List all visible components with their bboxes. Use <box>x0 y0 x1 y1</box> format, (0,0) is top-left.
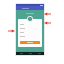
button[interactable]: Profile photo <box>28 17 32 21</box>
button[interactable]: Navigation item <box>35 52 44 55</box>
button[interactable]: Annotation marker <box>8 29 15 33</box>
button[interactable]: Annotation marker <box>44 21 51 25</box>
button[interactable]: Menu <box>16 6 44 10</box>
button[interactable] <box>20 41 40 44</box>
button[interactable]: Navigation item <box>16 52 26 55</box>
button[interactable]: Annotation marker <box>44 12 51 16</box>
button[interactable]: Navigation item <box>26 52 35 55</box>
